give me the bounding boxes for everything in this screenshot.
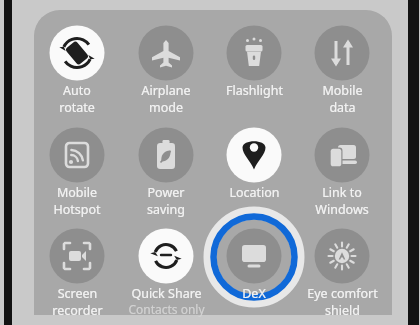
button[interactable]: Flashlight	[212, 21, 296, 99]
staticText: Eye comfort shield	[307, 285, 378, 319]
staticText: Auto rotate	[59, 82, 95, 116]
staticText: Location	[229, 184, 280, 201]
staticText: Quick Share	[131, 285, 202, 302]
button[interactable]: Mobile Hotspot	[35, 123, 119, 201]
staticText: Contacts only	[128, 301, 205, 317]
staticText: Link to Windows	[315, 184, 369, 218]
button[interactable]: Location	[212, 123, 296, 201]
button[interactable]: Power saving	[124, 123, 208, 201]
staticText: Screen recorder	[52, 285, 103, 319]
staticText: Mobile Hotspot	[53, 184, 101, 218]
button[interactable]: Auto rotate	[35, 21, 119, 99]
staticText: Flashlight	[226, 82, 283, 99]
button[interactable]: Screen recorder	[35, 224, 119, 302]
button[interactable]: Eye comfort shield	[300, 224, 384, 302]
button[interactable]: DeX	[212, 224, 296, 302]
staticText: DeX	[242, 285, 266, 302]
button[interactable]: Link to Windows	[300, 123, 384, 201]
staticText: Power saving	[147, 184, 185, 218]
staticText: Airplane mode	[141, 82, 191, 116]
button[interactable]: Mobile data	[300, 21, 384, 99]
button[interactable]: Quick Share	[124, 224, 208, 302]
button[interactable]: Airplane mode	[124, 21, 208, 99]
staticText: Mobile data	[322, 82, 363, 116]
